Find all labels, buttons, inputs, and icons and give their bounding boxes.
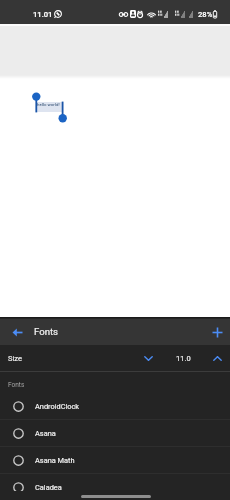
button[interactable]: Size [0, 345, 230, 371]
button[interactable]: Add font [205, 319, 229, 345]
staticText: Fonts [34, 326, 59, 337]
staticText: AndroidClock [35, 402, 80, 411]
button[interactable]: Asana [0, 420, 230, 447]
staticText: Fonts [8, 381, 25, 389]
button[interactable]: Asana Math [0, 447, 230, 474]
staticText: 11.0 [176, 354, 191, 363]
staticText: 11.01 [33, 10, 53, 19]
staticText: Caladea [35, 483, 62, 492]
staticText: hello world! [37, 102, 60, 107]
staticText: Size [8, 354, 22, 363]
staticText: Asana Math [35, 456, 75, 465]
button[interactable]: Back [5, 319, 29, 345]
button[interactable]: Caladea [0, 474, 230, 500]
staticText: Asana [35, 429, 56, 438]
button[interactable]: AndroidClock [0, 393, 230, 420]
staticText: 28% [198, 10, 213, 19]
